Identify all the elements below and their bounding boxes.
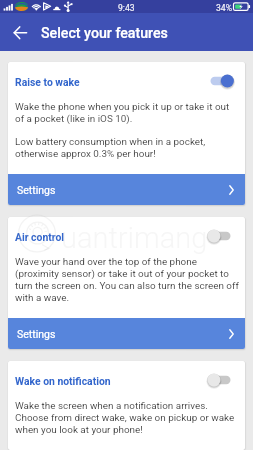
- button[interactable]: Settings: [8, 174, 245, 205]
- staticText: Raise to wake: [15, 76, 80, 88]
- staticText: 34%: [216, 3, 232, 13]
- staticText: Wake the phone when you pick it up or ta…: [15, 101, 239, 125]
- staticText: Wave your hand over the top of the phone…: [15, 256, 239, 304]
- staticText: 9:43: [118, 3, 135, 13]
- button[interactable]: Turn on: [207, 228, 241, 244]
- staticText: uantrimang: [61, 221, 208, 255]
- staticText: Wake on notification: [15, 375, 111, 387]
- button[interactable]: Back: [0, 13, 36, 51]
- staticText: Low battery consumption when in a pocket…: [15, 136, 239, 160]
- staticText: Wake the screen when a notification arri…: [15, 400, 239, 436]
- staticText: Select your features: [41, 25, 168, 42]
- staticText: Settings: [17, 184, 229, 196]
- staticText: Air control: [15, 231, 65, 243]
- staticText: Settings: [17, 328, 229, 340]
- button[interactable]: Settings: [8, 318, 245, 349]
- button[interactable]: Turn on: [207, 372, 241, 388]
- button[interactable]: Turn off: [207, 73, 241, 89]
